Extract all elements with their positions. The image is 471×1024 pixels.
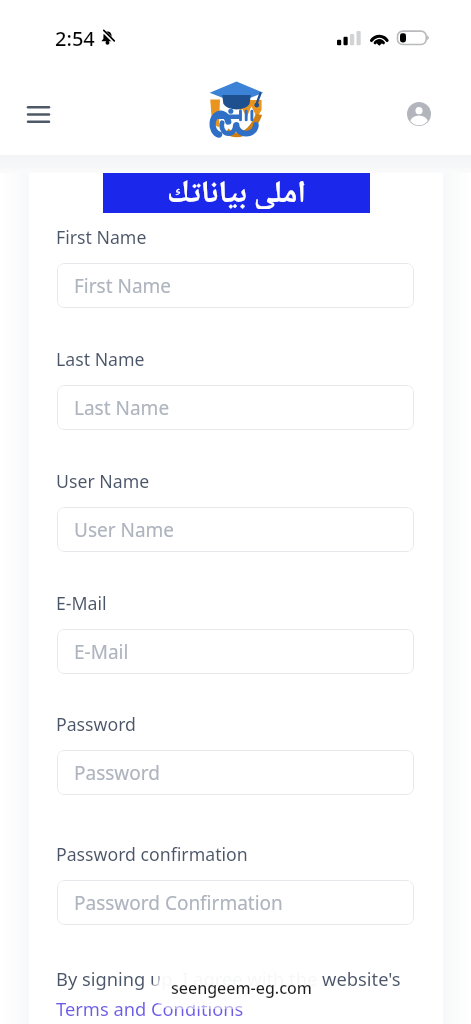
staticText: First Name bbox=[56, 225, 147, 249]
button[interactable]: Terms and Conditions bbox=[56, 996, 244, 1021]
staticText: User Name bbox=[56, 469, 150, 493]
staticText: By signing up, I agree with the website'… bbox=[56, 966, 401, 991]
button[interactable]: Last Name bbox=[57, 385, 414, 430]
button[interactable]: Password Confirmation bbox=[57, 880, 414, 925]
staticText: Password Confirmation bbox=[74, 890, 283, 916]
staticText: E-Mail bbox=[74, 639, 129, 665]
staticText: Password bbox=[74, 760, 160, 786]
staticText: Last Name bbox=[74, 395, 170, 421]
button[interactable]: املي بياناتك bbox=[103, 173, 370, 213]
staticText: 2:54 bbox=[55, 25, 95, 52]
staticText: Last Name bbox=[56, 347, 145, 371]
staticText: seengeem-eg.com bbox=[171, 977, 312, 999]
staticText: E-Mail bbox=[56, 591, 107, 615]
button[interactable]: First Name bbox=[57, 263, 414, 308]
button[interactable]: User Name bbox=[57, 507, 414, 552]
button[interactable]: Account bbox=[397, 92, 441, 136]
button[interactable]: Password bbox=[57, 750, 414, 795]
button[interactable]: Menu bbox=[16, 92, 61, 137]
staticText: Password confirmation bbox=[56, 842, 248, 866]
button[interactable]: E-Mail bbox=[57, 629, 414, 674]
staticText: User Name bbox=[74, 517, 175, 543]
staticText: املي بياناتك bbox=[167, 169, 307, 209]
staticText: First Name bbox=[74, 273, 172, 299]
staticText: Password bbox=[56, 712, 137, 736]
